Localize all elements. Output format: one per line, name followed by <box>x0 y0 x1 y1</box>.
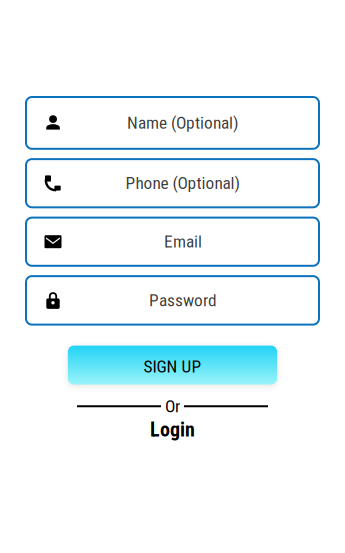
button[interactable]: SIGN UP <box>68 346 277 385</box>
button[interactable]: Password <box>26 276 319 325</box>
staticText: Password <box>149 290 217 310</box>
button[interactable]: Name (Optional) <box>26 97 319 149</box>
staticText: Login <box>150 418 195 441</box>
button[interactable]: Login <box>150 418 195 441</box>
staticText: Phone (Optional) <box>125 173 240 193</box>
button[interactable]: Email <box>26 218 319 266</box>
staticText: SIGN UP <box>143 356 201 377</box>
button[interactable]: Phone (Optional) <box>26 159 319 207</box>
staticText: Or <box>165 396 180 416</box>
staticText: Email <box>164 231 202 252</box>
staticText: Name (Optional) <box>127 113 239 133</box>
